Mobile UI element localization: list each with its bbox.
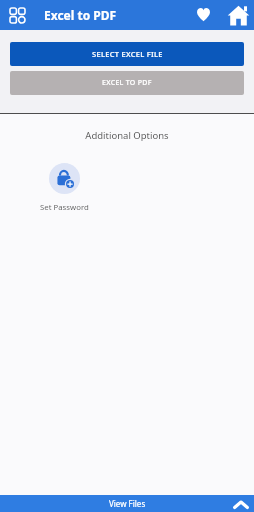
- staticText: Excel to PDF: [44, 7, 117, 23]
- staticText: Set Password: [40, 202, 89, 213]
- staticText: SELECT EXCEL FILE: [92, 49, 163, 59]
- button[interactable]: [224, 1, 253, 30]
- button[interactable]: Set Password: [38, 163, 90, 213]
- button[interactable]: EXCEL TO PDF: [10, 71, 244, 95]
- staticText: View Files: [109, 498, 146, 509]
- button[interactable]: View Files: [0, 495, 254, 512]
- button[interactable]: [2, 0, 32, 30]
- button[interactable]: SELECT EXCEL FILE: [10, 42, 244, 66]
- button[interactable]: [190, 2, 216, 28]
- staticText: EXCEL TO PDF: [102, 78, 152, 88]
- staticText: Additional Options: [0, 129, 254, 142]
